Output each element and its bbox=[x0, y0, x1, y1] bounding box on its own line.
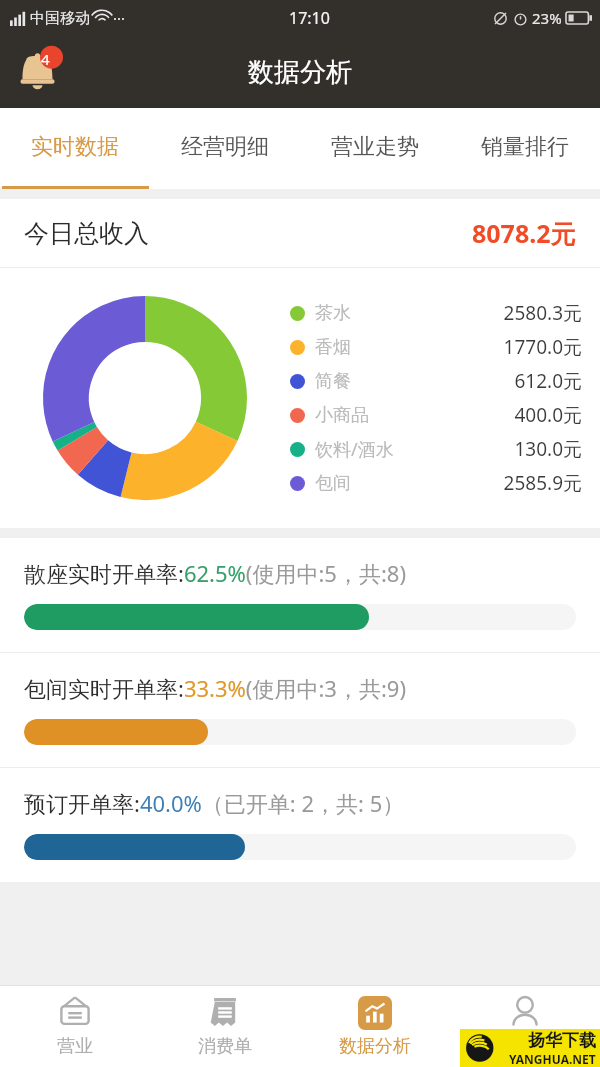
button[interactable]: 我的 bbox=[450, 986, 600, 1067]
staticText: 4 bbox=[41, 49, 50, 69]
staticText: 17:10 bbox=[289, 7, 330, 29]
button[interactable]: 营业 bbox=[0, 986, 150, 1067]
staticText: 612.0元 bbox=[410, 368, 582, 394]
staticText: 数据分析 bbox=[339, 1035, 411, 1058]
button[interactable]: 营业走势 bbox=[300, 108, 450, 186]
staticText: 茶水 bbox=[315, 302, 351, 325]
button[interactable]: 销量排行 bbox=[450, 108, 600, 186]
staticText: 我的 bbox=[507, 1035, 543, 1058]
staticText: 销量排行 bbox=[481, 133, 569, 161]
staticText: 小商品 bbox=[315, 404, 369, 427]
staticText: 中国移动 bbox=[30, 9, 90, 28]
staticText: 2585.9元 bbox=[410, 470, 582, 496]
staticText: 8078.2元 bbox=[472, 216, 576, 250]
staticText: 130.0元 bbox=[410, 436, 582, 462]
button[interactable]: 消费单 bbox=[150, 986, 300, 1067]
button[interactable]: 包间实时开单率:33.3%(使用中:3，共:9) bbox=[0, 653, 600, 767]
staticText: 饮料/酒水 bbox=[315, 437, 394, 462]
button[interactable]: 预订开单率:40.0%（已开单: 2，共: 5） bbox=[0, 768, 600, 882]
staticText: 营业 bbox=[57, 1035, 93, 1058]
staticText: 经营明细 bbox=[181, 133, 269, 161]
staticText: 400.0元 bbox=[410, 402, 582, 428]
button[interactable]: Notifications bbox=[14, 44, 70, 100]
staticText: 数据分析 bbox=[248, 56, 352, 89]
staticText: 简餐 bbox=[315, 370, 351, 393]
staticText: YANGHUA.NET bbox=[509, 1051, 596, 1067]
staticText: 营业走势 bbox=[331, 133, 419, 161]
button[interactable]: 散座实时开单率:62.5%(使用中:5，共:8) bbox=[0, 538, 600, 652]
button[interactable]: 实时数据 bbox=[0, 108, 150, 186]
staticText: 消费单 bbox=[198, 1035, 252, 1058]
staticText: 扬华下载 bbox=[528, 1030, 596, 1051]
staticText: 香烟 bbox=[315, 336, 351, 359]
staticText: 1770.0元 bbox=[410, 334, 582, 360]
staticText: 包间实时开单率:33.3%(使用中:3，共:9) bbox=[24, 673, 406, 703]
button[interactable]: 数据分析 bbox=[300, 986, 450, 1067]
staticText: 实时数据 bbox=[31, 133, 119, 161]
button[interactable]: 经营明细 bbox=[150, 108, 300, 186]
staticText: 包间 bbox=[315, 472, 351, 495]
staticText: 散座实时开单率:62.5%(使用中:5，共:8) bbox=[24, 558, 406, 588]
staticText: ··· bbox=[113, 8, 126, 28]
staticText: 23% bbox=[532, 8, 562, 28]
staticText: 今日总收入 bbox=[24, 218, 149, 249]
staticText: 预订开单率:40.0%（已开单: 2，共: 5） bbox=[24, 788, 405, 818]
staticText: 2580.3元 bbox=[410, 300, 582, 326]
